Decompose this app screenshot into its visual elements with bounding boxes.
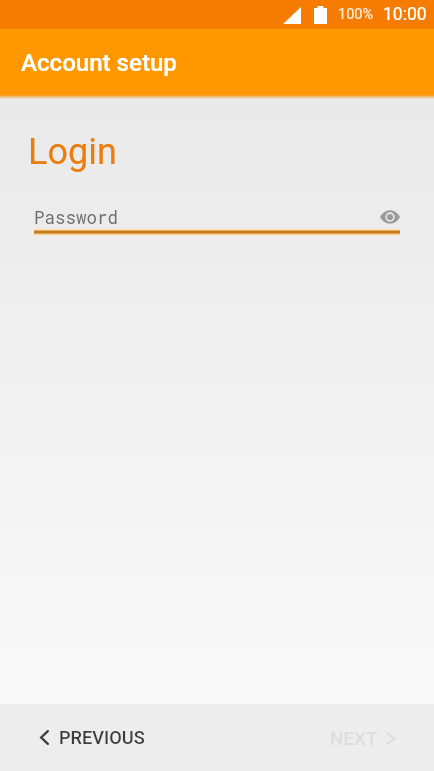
staticText: 10:00: [383, 4, 427, 25]
staticText: Login: [28, 131, 117, 173]
staticText: PREVIOUS: [59, 727, 145, 748]
staticText: Account setup: [21, 49, 177, 77]
staticText: Password: [34, 206, 119, 229]
staticText: NEXT: [330, 727, 378, 749]
button[interactable]: NEXT: [310, 715, 434, 761]
button[interactable]: PREVIOUS: [0, 715, 165, 760]
staticText: 100%: [338, 6, 374, 23]
button[interactable]: Show password: [375, 203, 405, 231]
